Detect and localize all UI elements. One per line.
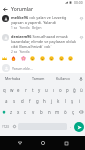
- button[interactable]: o: [57, 84, 64, 95]
- staticText: p: [66, 87, 69, 93]
- staticText: ı: [53, 87, 55, 93]
- staticText: denizem96 Sonuzlhazad emusk kazardalar, …: [11, 34, 78, 49]
- button[interactable]: React fire: [10, 55, 17, 62]
- staticText: y: [38, 87, 41, 93]
- button[interactable]: Merhaba: [0, 73, 26, 84]
- button[interactable]: i: [76, 95, 83, 106]
- staticText: melike96 cok yalan ve Lezzetig yapsan a …: [11, 15, 78, 25]
- staticText: n: [48, 109, 51, 115]
- button[interactable]: ü: [78, 84, 85, 95]
- button[interactable]: d: [18, 95, 26, 106]
- staticText: q: [3, 87, 6, 93]
- button[interactable]: React smile: [58, 55, 65, 62]
- button[interactable]: ı: [50, 84, 57, 95]
- button[interactable]: Backspace: [77, 106, 85, 117]
- staticText: u: [45, 87, 48, 93]
- button[interactable]: React smile: [67, 55, 74, 62]
- button[interactable]: melike96 cok yalan ve Lezzetig yapsan a …: [2, 13, 84, 30]
- button[interactable]: Tamam: [26, 73, 51, 84]
- staticText: o: [59, 87, 62, 93]
- button[interactable]: Shift: [0, 106, 8, 117]
- staticText: ö: [64, 109, 67, 115]
- button[interactable]: v: [29, 106, 37, 117]
- button[interactable]: Back: [14, 137, 26, 149]
- button[interactable]: Emoji keyboard: [11, 117, 18, 136]
- staticText: c: [24, 109, 27, 115]
- button[interactable]: React crown: [1, 55, 8, 62]
- staticText: Kullanıcı: [56, 76, 71, 81]
- staticText: r: [25, 87, 27, 93]
- staticText: g: [36, 98, 39, 104]
- staticText: b: [40, 109, 43, 115]
- button[interactable]: a: [2, 95, 10, 106]
- button[interactable]: z: [8, 106, 15, 117]
- button[interactable]: Back: [1, 5, 9, 13]
- staticText: ç: [72, 109, 75, 115]
- staticText: x: [17, 109, 20, 115]
- button[interactable]: e: [15, 84, 22, 95]
- staticText: m: [55, 109, 60, 115]
- staticText: ş: [71, 98, 74, 104]
- button[interactable]: n: [45, 106, 53, 117]
- button[interactable]: ş: [69, 95, 76, 106]
- button[interactable]: j: [48, 95, 55, 106]
- staticText: Yorum ekle...: [12, 66, 33, 71]
- staticText: 1 sa Yanıtla Beğen: [11, 26, 42, 30]
- staticText: Merhaba: [5, 76, 21, 81]
- staticText: e: [17, 87, 20, 93]
- button[interactable]: y: [36, 84, 43, 95]
- button[interactable]: React smile: [39, 55, 46, 62]
- button[interactable]: w: [8, 84, 15, 95]
- button[interactable]: s: [10, 95, 18, 106]
- button[interactable]: u: [43, 84, 50, 95]
- staticText: 00:00: [74, 0, 83, 5]
- button[interactable]: g: [34, 95, 41, 106]
- button[interactable]: ç: [69, 106, 77, 117]
- button[interactable]: React smile: [29, 55, 36, 62]
- button[interactable]: h: [41, 95, 48, 106]
- staticText: t: [32, 87, 34, 93]
- button[interactable]: q: [0, 84, 8, 95]
- staticText: .: [70, 124, 72, 129]
- button[interactable]: Yorum ekle...: [12, 64, 82, 72]
- staticText: Yorumlar: [11, 6, 34, 13]
- staticText: z: [10, 109, 13, 115]
- staticText: ğ: [73, 87, 76, 93]
- staticText: f: [29, 98, 31, 104]
- button[interactable]: l: [62, 95, 69, 106]
- button[interactable]: k: [55, 95, 62, 106]
- staticText: ?123: [2, 125, 9, 129]
- button[interactable]: Like: [78, 15, 84, 21]
- staticText: v: [32, 109, 35, 115]
- staticText: i: [79, 98, 81, 104]
- button[interactable]: Send: [74, 122, 84, 132]
- button[interactable]: f: [26, 95, 34, 106]
- staticText: l: [65, 98, 67, 104]
- button[interactable]: m: [53, 106, 61, 117]
- button[interactable]: Voice input: [76, 73, 85, 84]
- button[interactable]: denizem96 Sonuzlhazad emusk kazardalar, …: [2, 30, 84, 54]
- button[interactable]: ğ: [71, 84, 78, 95]
- button[interactable]: r: [22, 84, 29, 95]
- button[interactable]: b: [37, 106, 45, 117]
- staticText: j: [51, 98, 53, 104]
- button[interactable]: React flower: [20, 55, 27, 62]
- staticText: k: [57, 98, 60, 104]
- button[interactable]: Home: [37, 137, 49, 149]
- button[interactable]: p: [64, 84, 71, 95]
- button[interactable]: t: [29, 84, 36, 95]
- button[interactable]: Like: [78, 34, 84, 40]
- button[interactable]: ö: [61, 106, 69, 117]
- staticText: s: [13, 98, 16, 104]
- button[interactable]: x: [15, 106, 22, 117]
- staticText: 2 sa Yanıtla: [11, 50, 30, 54]
- staticText: w: [10, 87, 14, 93]
- button[interactable]: Recents: [60, 137, 72, 149]
- button[interactable]: Kullanıcı: [51, 73, 76, 84]
- staticText: a: [5, 98, 8, 104]
- button[interactable]: React smile: [48, 55, 55, 62]
- button[interactable]: ?123: [0, 117, 11, 136]
- button[interactable]: c: [22, 106, 29, 117]
